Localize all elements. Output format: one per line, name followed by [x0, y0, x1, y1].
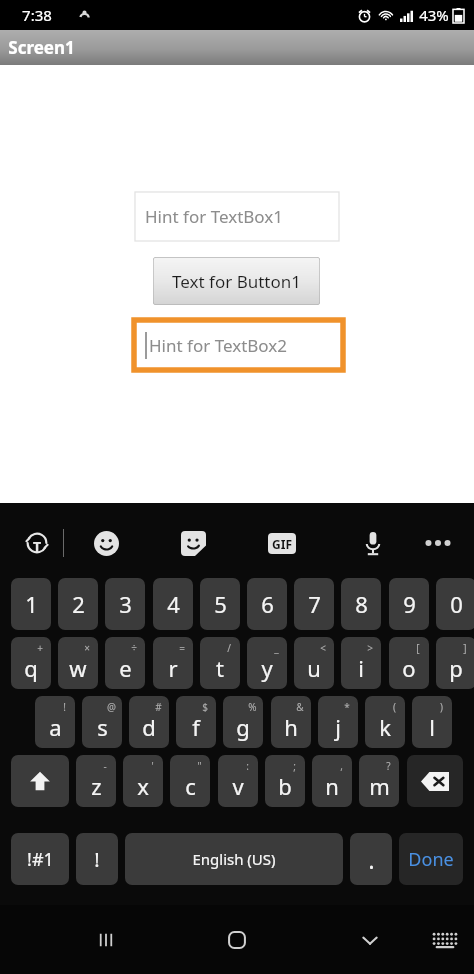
other: Battery: [453, 8, 464, 23]
other: Alarm: [357, 8, 372, 23]
button[interactable]: ": [170, 755, 210, 807]
staticText: _: [274, 641, 279, 655]
staticText: #: [155, 700, 162, 714]
button[interactable]: Voice input: [360, 530, 386, 556]
button[interactable]: ÷: [105, 637, 145, 689]
other: Notification: [78, 9, 91, 22]
button[interactable]: *: [318, 696, 358, 748]
staticText: o: [402, 653, 416, 683]
staticText: x: [137, 771, 149, 801]
button[interactable]: Hide keyboard: [358, 928, 382, 952]
staticText: (: [393, 700, 396, 714]
button[interactable]: &: [271, 696, 311, 748]
staticText: @: [107, 700, 116, 714]
button[interactable]: :: [218, 755, 258, 807]
button[interactable]: Hint for TextBox1: [135, 192, 339, 241]
button[interactable]: Recent apps: [94, 928, 118, 952]
button[interactable]: ;: [265, 755, 305, 807]
button[interactable]: More options: [424, 539, 452, 547]
staticText: l: [429, 712, 435, 742]
button[interactable]: Home: [225, 928, 249, 952]
button[interactable]: 0: [436, 578, 474, 630]
staticText: *: [344, 700, 350, 714]
staticText: 1: [25, 589, 38, 619]
button[interactable]: 8: [341, 578, 381, 630]
button[interactable]: 1: [11, 578, 51, 630]
button[interactable]: Shift: [11, 755, 69, 807]
staticText: ;: [293, 759, 296, 773]
button[interactable]: 7: [294, 578, 334, 630]
button[interactable]: Translate: [24, 530, 50, 556]
staticText: ): [440, 700, 443, 714]
button[interactable]: Done: [399, 833, 463, 885]
button[interactable]: ]: [436, 637, 474, 689]
staticText: 7:38: [22, 5, 52, 25]
button[interactable]: Stickers: [181, 531, 206, 556]
staticText: /: [227, 641, 231, 655]
button[interactable]: 6: [247, 578, 287, 630]
button[interactable]: (: [365, 696, 405, 748]
staticText: 9: [403, 589, 416, 619]
button[interactable]: 9: [389, 578, 429, 630]
button[interactable]: @: [82, 696, 122, 748]
button[interactable]: _: [247, 637, 287, 689]
button[interactable]: ×: [58, 637, 98, 689]
staticText: y: [261, 653, 273, 683]
staticText: ?: [386, 759, 391, 773]
button[interactable]: ): [412, 696, 452, 748]
button[interactable]: ?: [359, 755, 399, 807]
staticText: Hint for TextBox2: [149, 334, 287, 357]
button[interactable]: $: [176, 696, 216, 748]
button[interactable]: 5: [200, 578, 240, 630]
button[interactable]: /: [200, 637, 240, 689]
staticText: p: [449, 653, 463, 683]
button[interactable]: %: [223, 696, 263, 748]
staticText: :: [246, 759, 249, 773]
staticText: f: [192, 712, 200, 742]
button[interactable]: GIF: [268, 533, 296, 554]
button[interactable]: Backspace: [407, 755, 463, 807]
staticText: Hint for TextBox1: [145, 205, 283, 228]
staticText: &: [296, 700, 304, 714]
button[interactable]: [: [389, 637, 429, 689]
staticText: <: [320, 641, 326, 655]
staticText: z: [91, 771, 102, 801]
staticText: ]: [463, 641, 467, 655]
button[interactable]: +: [11, 637, 51, 689]
button[interactable]: !#1: [11, 833, 69, 885]
button[interactable]: English (US): [125, 833, 343, 885]
staticText: s: [97, 712, 108, 742]
staticText: e: [119, 653, 132, 683]
button[interactable]: 2: [58, 578, 98, 630]
button[interactable]: >: [341, 637, 381, 689]
button[interactable]: Hint for TextBox2: [134, 320, 343, 370]
staticText: d: [142, 712, 156, 742]
staticText: Screen1: [8, 36, 75, 59]
button[interactable]: .: [350, 833, 392, 885]
button[interactable]: !: [76, 833, 118, 885]
staticText: v: [232, 771, 244, 801]
staticText: ,: [340, 759, 343, 773]
button[interactable]: 4: [153, 578, 193, 630]
button[interactable]: Keyboard: [432, 931, 458, 949]
button[interactable]: -: [76, 755, 116, 807]
staticText: 0: [450, 589, 463, 619]
button[interactable]: !: [35, 696, 75, 748]
staticText: .: [368, 843, 375, 876]
staticText: w: [69, 653, 87, 683]
button[interactable]: Emoji: [94, 531, 119, 556]
button[interactable]: #: [129, 696, 169, 748]
button[interactable]: <: [294, 637, 334, 689]
staticText: j: [335, 712, 341, 742]
staticText: ÷: [131, 641, 137, 655]
staticText: 8: [355, 589, 368, 619]
staticText: 2: [72, 589, 85, 619]
button[interactable]: =: [153, 637, 193, 689]
button[interactable]: 3: [105, 578, 145, 630]
button[interactable]: ': [123, 755, 163, 807]
button[interactable]: ,: [312, 755, 352, 807]
staticText: m: [369, 771, 390, 801]
button[interactable]: Text for Button1: [153, 257, 320, 305]
staticText: c: [185, 771, 196, 801]
staticText: t: [216, 653, 224, 683]
